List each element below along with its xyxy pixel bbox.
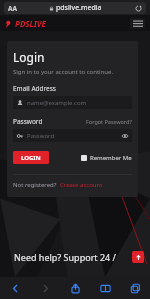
staticText: AA	[8, 4, 17, 13]
button[interactable]: Forgot Password?	[86, 118, 132, 125]
staticText: Email Address	[13, 84, 56, 93]
button[interactable]: PDSLIVE	[5, 18, 46, 29]
button[interactable]: Show password	[122, 133, 128, 139]
button[interactable]: Password	[13, 129, 132, 142]
button[interactable]: AA	[4, 2, 146, 14]
button[interactable]: Remember Me	[81, 154, 132, 162]
button[interactable]: LOGIN	[13, 151, 49, 164]
staticText: name@example.com	[27, 99, 87, 107]
staticText: pdslive.media	[56, 3, 102, 13]
staticText: Password	[13, 117, 43, 126]
staticText: PDSLIVE	[15, 18, 46, 29]
button[interactable]: Forward	[30, 277, 60, 299]
staticText: Create account	[60, 181, 103, 189]
button[interactable]: Bookmarks	[90, 277, 120, 299]
staticText: Password	[27, 132, 55, 140]
staticText: LOGIN	[21, 154, 41, 162]
staticText: Not registered?	[13, 181, 57, 189]
button[interactable]: Menu	[130, 18, 145, 29]
staticText: Need help? Support 24 /	[14, 251, 116, 263]
staticText: Sign in to your account to continue.	[13, 68, 114, 76]
button[interactable]: Back	[0, 277, 30, 299]
button[interactable]: Tabs	[120, 277, 150, 299]
staticText: Login	[13, 49, 45, 65]
button[interactable]: Create account	[60, 181, 103, 189]
staticText: Remember Me	[90, 154, 132, 162]
button[interactable]: Share	[60, 277, 90, 299]
button[interactable]: name@example.com	[13, 96, 132, 109]
button[interactable]: Scroll to top	[132, 251, 144, 263]
staticText: Forgot Password?	[86, 118, 132, 125]
other: Reload	[135, 5, 142, 12]
